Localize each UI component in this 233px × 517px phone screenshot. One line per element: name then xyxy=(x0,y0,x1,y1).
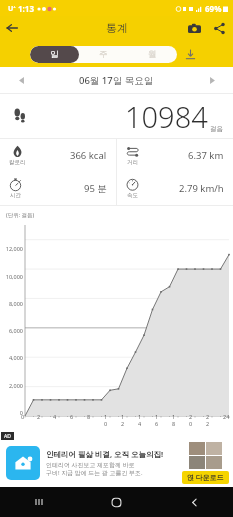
button[interactable]: AD xyxy=(0,431,233,487)
button[interactable]: 월 xyxy=(128,46,177,63)
staticText: 칼로리 xyxy=(9,159,26,166)
staticText: 2,000 xyxy=(8,382,23,389)
staticText: 일 xyxy=(50,49,59,60)
staticText: 인테리어 사진보고 제포함께 바로 구비! 지금 맘에 드는 광 고를긴 부조. xyxy=(46,461,143,477)
staticText: 시간 xyxy=(10,192,21,199)
staticText: 속도 xyxy=(127,192,138,199)
staticText: 366 kcal xyxy=(70,149,107,162)
staticText: 4,000 xyxy=(8,354,23,361)
staticText: 95 분 xyxy=(84,182,107,195)
staticText: 통계 xyxy=(106,21,128,35)
staticText: 0 xyxy=(19,409,23,416)
staticText: 엱 다운로드 xyxy=(187,473,224,483)
button[interactable]: 일 xyxy=(30,46,79,63)
staticText: AD xyxy=(4,433,11,440)
button[interactable]: Back xyxy=(155,487,233,517)
staticText: 10984 xyxy=(125,97,208,136)
staticText: 인테리어 필삹 비결, 오직 오늘의집! xyxy=(46,449,164,459)
button[interactable]: Previous day xyxy=(12,71,30,89)
staticText: 8,000 xyxy=(8,300,23,307)
staticText: 6,000 xyxy=(8,327,23,334)
button[interactable]: 엱 다운로드 xyxy=(182,471,229,484)
button[interactable]: Share xyxy=(207,16,231,40)
button[interactable]: 거리 xyxy=(117,139,233,172)
staticText: 주 xyxy=(99,49,108,60)
button[interactable]: Next day xyxy=(203,71,221,89)
button[interactable]: Recent apps xyxy=(0,487,77,517)
button[interactable]: Capture screenshot xyxy=(181,16,207,40)
staticText: 06월 17일 목요일 xyxy=(79,74,154,87)
button[interactable]: Back xyxy=(0,16,24,40)
button[interactable]: 칼로리 xyxy=(0,139,116,172)
staticText: 12,000 xyxy=(5,245,23,252)
staticText: 10,000 xyxy=(5,273,23,280)
staticText: U⁺ xyxy=(8,4,16,14)
button[interactable]: Home xyxy=(77,487,155,517)
staticText: 24 xyxy=(223,413,233,420)
staticText: 69% xyxy=(205,3,222,14)
staticText: 6.37 km xyxy=(188,149,224,162)
staticText: 월 xyxy=(148,49,157,60)
button[interactable]: 속도 xyxy=(117,172,233,205)
staticText: 1:13 xyxy=(18,3,34,14)
button[interactable]: 주 xyxy=(79,46,128,63)
staticText: 걸음 xyxy=(210,125,223,133)
staticText: 거리 xyxy=(127,159,138,166)
button[interactable]: 시간 xyxy=(0,172,116,205)
button[interactable]: Download xyxy=(177,44,203,64)
staticText: 2.79 km/h xyxy=(179,182,224,195)
staticText: (단위: 걸음) xyxy=(6,211,35,219)
